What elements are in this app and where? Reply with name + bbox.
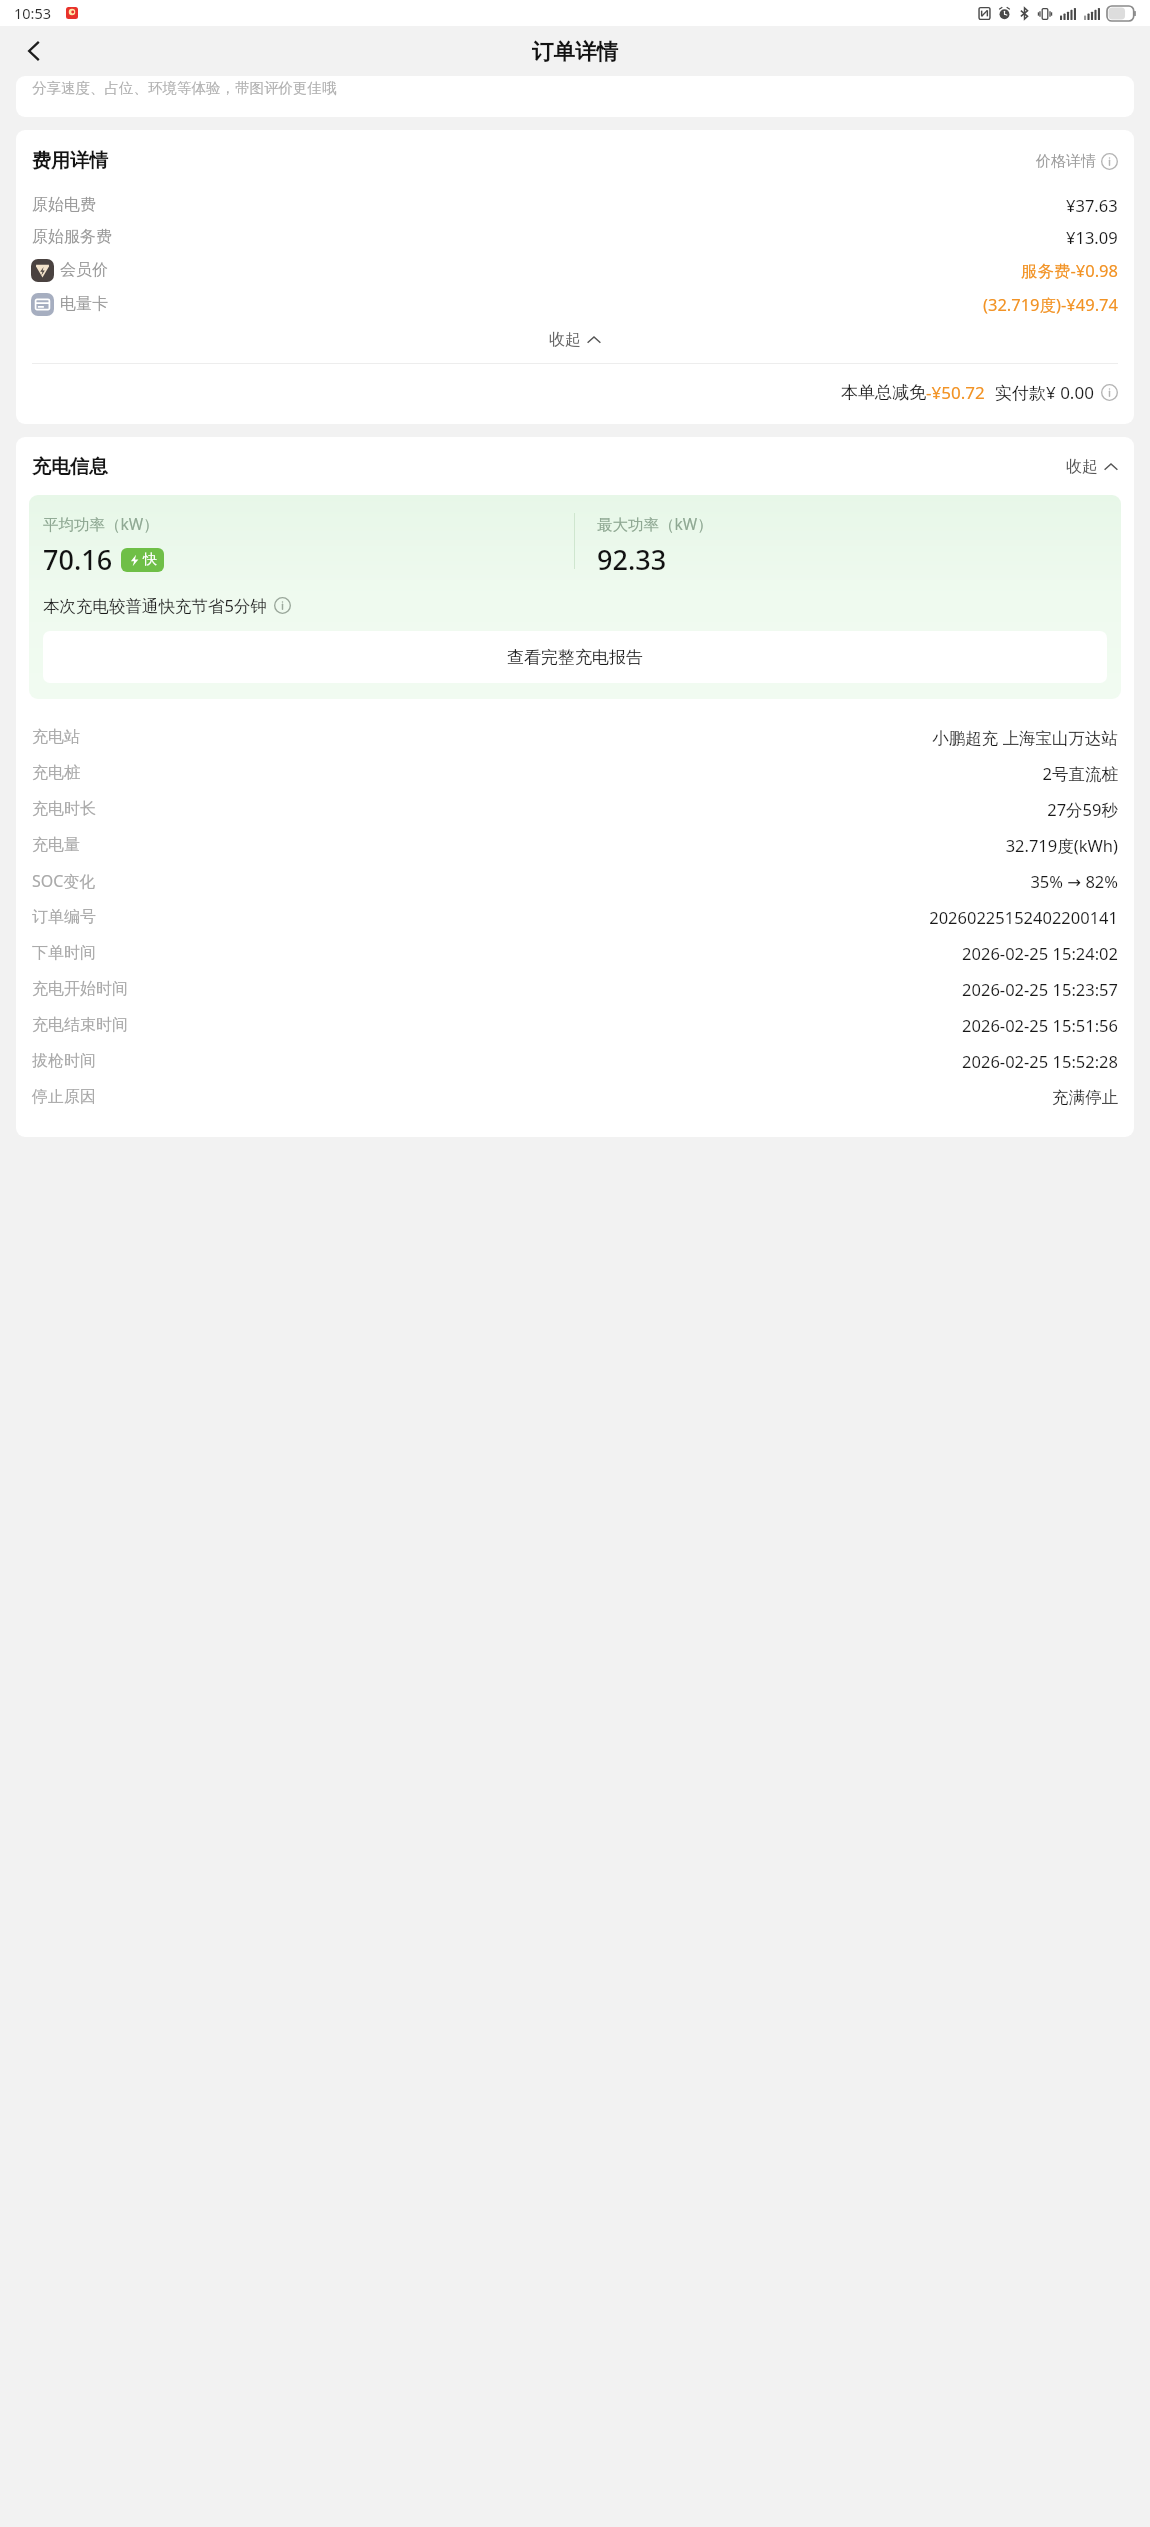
staticText: 查看完整充电报告 bbox=[507, 647, 643, 668]
button[interactable]: Back bbox=[10, 27, 58, 75]
staticText: 订单详情 bbox=[532, 38, 618, 65]
staticText: 本次充电较普通快充节省5分钟 bbox=[43, 594, 267, 617]
staticText: 92.33 bbox=[597, 541, 667, 578]
staticText: SOC变化 bbox=[32, 870, 96, 892]
staticText: 最大功率（kW） bbox=[597, 513, 713, 534]
staticText: 原始服务费 bbox=[32, 227, 112, 247]
staticText: 费用详情 bbox=[32, 149, 108, 173]
staticText: 实付款¥ 0.00 bbox=[995, 381, 1094, 404]
staticText: 2号直流桩 bbox=[1042, 762, 1118, 785]
button[interactable]: 收起 bbox=[16, 330, 1134, 350]
staticText: 27分59秒 bbox=[1047, 798, 1118, 821]
staticText: 20260225152402200141 bbox=[929, 906, 1118, 928]
staticText: 10:53 bbox=[14, 3, 52, 23]
staticText: 下单时间 bbox=[32, 943, 96, 963]
staticText: 70.16 bbox=[43, 541, 113, 578]
staticText: 2026-02-25 15:51:56 bbox=[962, 1014, 1118, 1036]
staticText: 充电站 bbox=[32, 727, 80, 747]
staticText: 32.719度(kWh) bbox=[1005, 834, 1118, 857]
staticText: 快 bbox=[143, 551, 157, 569]
staticText: 停止原因 bbox=[32, 1087, 96, 1107]
staticText: 原始电费 bbox=[32, 195, 96, 215]
staticText: 充满停止 bbox=[1052, 1087, 1118, 1108]
staticText: 充电信息 bbox=[32, 455, 108, 479]
staticText: 收起 bbox=[1066, 457, 1098, 477]
staticText: 充电时长 bbox=[32, 799, 96, 819]
staticText: 充电量 bbox=[32, 835, 80, 855]
staticText: 价格详情 bbox=[1036, 152, 1096, 171]
staticText: 2026-02-25 15:24:02 bbox=[962, 942, 1118, 964]
staticText: 充电桩 bbox=[32, 763, 80, 783]
staticText: 会员价 bbox=[60, 260, 108, 280]
staticText: 小鹏超充 上海宝山万达站 bbox=[932, 726, 1118, 749]
staticText: (32.719度)-¥49.74 bbox=[983, 293, 1118, 316]
button[interactable]: 分享速度、占位、环境等体验，带图评价更佳哦 bbox=[16, 76, 1134, 117]
staticText: -¥50.72 bbox=[926, 381, 985, 404]
staticText: 收起 bbox=[549, 330, 581, 350]
staticText: 2026-02-25 15:23:57 bbox=[962, 978, 1118, 1000]
staticText: 平均功率（kW） bbox=[43, 513, 159, 534]
staticText: 分享速度、占位、环境等体验，带图评价更佳哦 bbox=[32, 79, 337, 97]
staticText: 电量卡 bbox=[60, 294, 108, 314]
button[interactable]: 查看完整充电报告 bbox=[43, 631, 1107, 683]
staticText: 2026-02-25 15:52:28 bbox=[962, 1050, 1118, 1072]
staticText: 充电结束时间 bbox=[32, 1015, 128, 1035]
staticText: 订单编号 bbox=[32, 907, 96, 927]
staticText: 本单总减免 bbox=[841, 382, 926, 403]
staticText: 拔枪时间 bbox=[32, 1051, 96, 1071]
button[interactable]: 收起 bbox=[1066, 457, 1118, 477]
staticText: 充电开始时间 bbox=[32, 979, 128, 999]
staticText: 35% → 82% bbox=[1030, 870, 1118, 892]
staticText: 服务费-¥0.98 bbox=[1021, 259, 1118, 282]
button[interactable]: 价格详情 bbox=[1036, 152, 1118, 171]
staticText: ¥37.63 bbox=[1066, 194, 1118, 216]
staticText: ¥13.09 bbox=[1066, 226, 1118, 248]
